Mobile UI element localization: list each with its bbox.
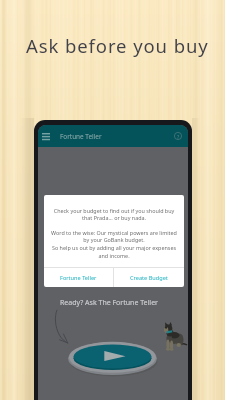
button[interactable]: Ask the fortune teller xyxy=(68,341,158,379)
button[interactable]: Fortune Teller xyxy=(44,268,113,287)
staticText: Fortune Teller xyxy=(60,132,102,141)
staticText: Ask before you buy xyxy=(26,33,209,58)
button[interactable]: Help xyxy=(171,129,185,143)
staticText: Check your budget to find out if you sho… xyxy=(53,207,175,222)
staticText: Word to the wise: Our mystical powers ar… xyxy=(49,229,179,260)
staticText: Ready? Ask The Fortune Teller xyxy=(60,298,158,308)
staticText: ? xyxy=(177,133,180,140)
button[interactable]: Menu xyxy=(39,130,52,143)
button[interactable]: Create Budget xyxy=(114,268,184,287)
staticText: Fortune Teller xyxy=(60,274,97,282)
staticText: Create Budget xyxy=(130,274,168,282)
